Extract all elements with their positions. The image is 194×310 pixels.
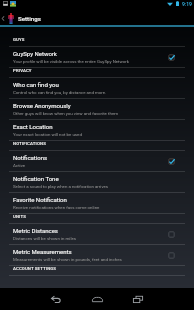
button[interactable]: Notifications <box>0 151 194 171</box>
button[interactable]: Favorite Notification <box>0 193 194 213</box>
staticText: Measurements will be shown in pounds, fe… <box>13 257 122 262</box>
button[interactable]: Who can find you <box>0 78 194 98</box>
button[interactable]: Exact Location <box>0 120 194 140</box>
staticText: Active <box>13 163 26 168</box>
button[interactable]: Back <box>44 288 68 310</box>
button[interactable]: Recent apps <box>126 288 150 310</box>
staticText: 9:19 <box>182 1 192 7</box>
staticText: Control who can find you, by distance an… <box>13 90 107 95</box>
staticText: Select a sound to play when a notificati… <box>13 184 109 189</box>
button[interactable]: Metric Distances <box>0 224 194 244</box>
staticText: Browse Anonymously <box>13 102 71 109</box>
staticText: Who can find you <box>13 81 59 88</box>
staticText: Your exact location will not be used <box>13 132 82 137</box>
staticText: GuySpy Network <box>13 50 57 57</box>
staticText: Receive notifications when favs come onl… <box>13 205 100 210</box>
button[interactable]: Browse Anonymously <box>0 99 194 119</box>
button[interactable]: Notification Tone <box>0 172 194 192</box>
button[interactable]: Navigate up <box>0 11 14 25</box>
button[interactable]: Metric Measurements <box>0 245 194 265</box>
staticText: Favorite Notification <box>13 196 67 203</box>
staticText: Metric Distances <box>13 227 58 234</box>
staticText: PRIVACY <box>13 68 32 73</box>
staticText: Notification Tone <box>13 175 59 182</box>
button[interactable]: GuySpy Network <box>0 47 194 67</box>
staticText: Exact Location <box>13 123 53 130</box>
staticText: ACCOUNT SETTINGS <box>13 266 57 271</box>
staticText: NOTIFICATIONS <box>13 141 46 146</box>
staticText: Other guys will know when you view and f… <box>13 111 119 116</box>
staticText: GUYS <box>13 37 25 42</box>
staticText: Your profile will be visible across the … <box>13 59 130 64</box>
staticText: Settings <box>18 15 41 22</box>
button[interactable]: Home <box>85 288 109 310</box>
staticText: Distances will be shown in miles <box>13 236 77 241</box>
staticText: Metric Measurements <box>13 248 72 255</box>
staticText: UNITS <box>13 214 26 219</box>
staticText: Notifications <box>13 154 48 161</box>
